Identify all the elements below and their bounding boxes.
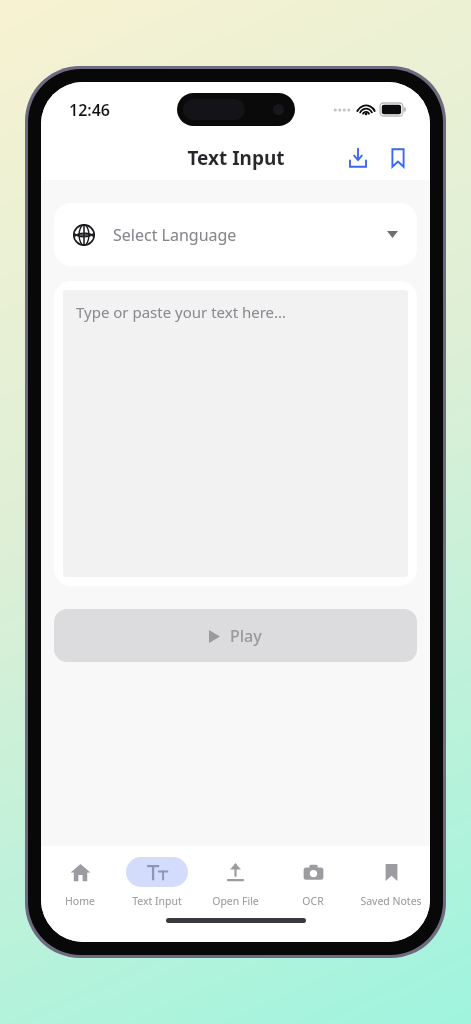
button[interactable]: Bookmark	[378, 138, 418, 178]
staticText: Home	[65, 894, 95, 908]
staticText: Text Input	[132, 894, 182, 908]
staticText: Open File	[212, 894, 259, 908]
button[interactable]: Download	[338, 138, 378, 178]
button[interactable]: Open File	[196, 846, 274, 918]
button[interactable]: OCR	[274, 846, 352, 918]
staticText: Play	[230, 625, 262, 647]
staticText: Saved Notes	[360, 894, 422, 908]
staticText: OCR	[302, 894, 324, 908]
button[interactable]: Play	[54, 609, 417, 662]
staticText: Type or paste your text here...	[76, 302, 287, 322]
staticText: Text Input	[187, 145, 285, 171]
button[interactable]: Select Language	[54, 203, 417, 266]
staticText: Select Language	[113, 224, 237, 246]
staticText: 12:46	[69, 99, 111, 121]
button[interactable]: Home	[41, 846, 118, 918]
button[interactable]: Text Input	[118, 846, 196, 918]
button[interactable]: Type or paste your text here...	[63, 290, 408, 577]
button[interactable]: Saved Notes	[352, 846, 430, 918]
